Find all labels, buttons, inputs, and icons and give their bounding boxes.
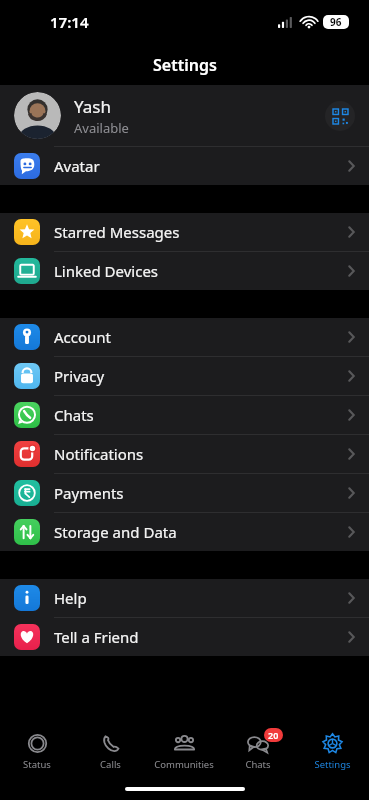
staticText: 17:14 (50, 12, 89, 32)
staticText: Available (74, 119, 129, 137)
staticText: 96 (330, 15, 342, 29)
button[interactable]: Calls (73, 722, 147, 778)
button[interactable]: Avatar (0, 147, 369, 185)
staticText: Payments (54, 483, 124, 503)
staticText: Privacy (54, 366, 105, 386)
staticText: Tell a Friend (54, 627, 139, 647)
staticText: Linked Devices (54, 261, 159, 281)
staticText: Settings (153, 54, 217, 76)
button[interactable]: Storage and Data (0, 513, 369, 551)
button[interactable]: Settings (295, 722, 369, 778)
button[interactable]: Communities (147, 722, 221, 778)
staticText: Chats (54, 405, 94, 425)
button[interactable]: Tell a Friend (0, 618, 369, 656)
staticText: Storage and Data (54, 522, 177, 542)
button[interactable]: Notifications (0, 435, 369, 473)
button[interactable]: Payments (0, 474, 369, 512)
button[interactable]: Account (0, 318, 369, 356)
staticText: Avatar (54, 156, 100, 176)
staticText: Account (54, 327, 112, 347)
button[interactable]: Linked Devices (0, 252, 369, 290)
button[interactable]: Privacy (0, 357, 369, 395)
button[interactable]: Show QR code (325, 101, 355, 131)
button[interactable]: Chats (0, 396, 369, 434)
staticText: Starred Messages (54, 222, 180, 242)
staticText: Communities (154, 758, 214, 771)
staticText: Settings (314, 758, 351, 771)
staticText: Calls (100, 758, 121, 771)
staticText: 20 (268, 729, 279, 741)
staticText: Yash (74, 95, 111, 118)
button[interactable]: Help (0, 579, 369, 617)
staticText: Status (23, 758, 51, 771)
button[interactable]: Status (0, 722, 73, 778)
staticText: Chats (245, 758, 271, 771)
button[interactable]: Yash (0, 85, 369, 146)
button[interactable]: Starred Messages (0, 213, 369, 251)
button[interactable]: 20 (221, 722, 295, 778)
staticText: Notifications (54, 444, 144, 464)
staticText: Help (54, 588, 87, 608)
